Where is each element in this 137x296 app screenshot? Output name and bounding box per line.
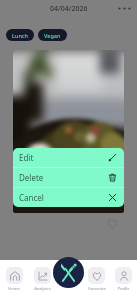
button[interactable]: Vegan — [38, 29, 67, 41]
staticText: Cancel — [19, 192, 44, 203]
button[interactable]: More options — [116, 0, 132, 16]
button[interactable]: Add meal — [53, 257, 84, 288]
button[interactable]: Profile — [110, 267, 137, 291]
staticText: Profile — [117, 286, 130, 291]
button[interactable]: Favourite — [83, 267, 110, 291]
staticText: Lunch — [12, 32, 28, 39]
button[interactable]: Analytics — [28, 267, 56, 291]
button[interactable]: Lunch — [6, 29, 34, 41]
button[interactable]: Home — [0, 267, 28, 291]
staticText: Home — [8, 286, 20, 291]
button[interactable]: Favourite — [103, 214, 121, 232]
button[interactable]: Delete — [13, 168, 124, 187]
button[interactable]: Edit — [13, 148, 124, 167]
button[interactable]: Meal photo — [13, 50, 124, 213]
staticText: Vegan — [44, 32, 61, 39]
button[interactable]: Cancel — [13, 188, 124, 207]
staticText: Edit — [19, 152, 34, 163]
staticText: 04/04/2026 — [50, 4, 88, 14]
staticText: Analytics — [34, 286, 51, 291]
staticText: Delete — [19, 172, 44, 183]
staticText: Favourite — [88, 286, 106, 291]
